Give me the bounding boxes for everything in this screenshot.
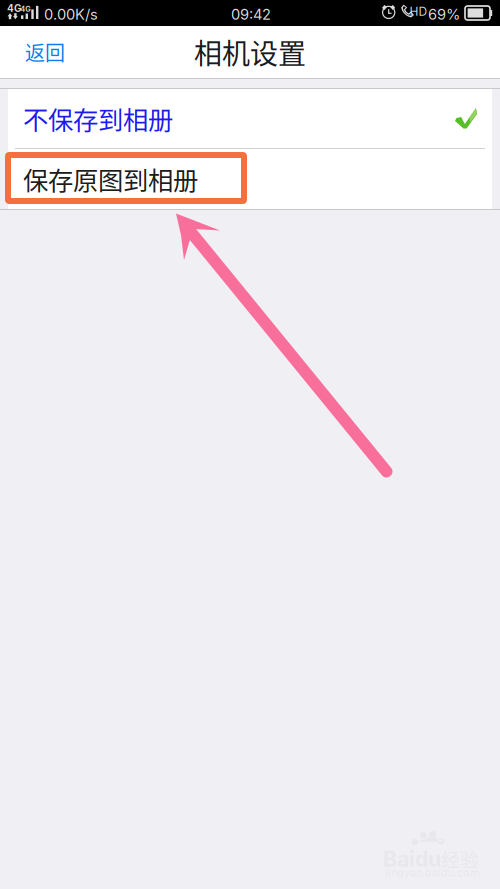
staticText: 4G [7,2,22,14]
staticText: 4G [20,5,31,13]
button[interactable]: 保存原图到相册 [8,149,492,209]
staticText: HD [409,4,427,19]
button[interactable]: 返回 [0,21,87,82]
staticText: 09:42 [231,5,271,23]
staticText: 不保存到相册 [23,100,173,137]
staticText: Baidu [383,846,441,872]
staticText: 0.00K/s [44,5,98,23]
staticText: 相机设置 [194,32,306,72]
staticText: 保存原图到相册 [23,161,198,197]
staticText: 69% [428,5,460,23]
button[interactable]: 不保存到相册 [8,89,492,148]
staticText: 返回 [25,37,65,66]
